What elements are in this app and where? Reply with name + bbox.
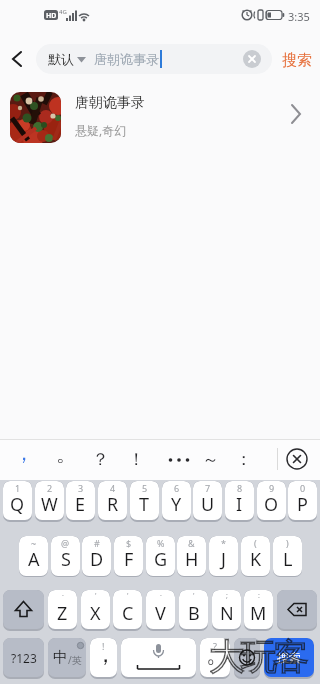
staticText: % [157, 537, 165, 549]
button[interactable]: ， [7, 444, 33, 474]
button[interactable] [6, 47, 32, 71]
button[interactable]: · [48, 590, 77, 631]
staticText: : [258, 591, 260, 601]
button[interactable] [234, 638, 260, 679]
button[interactable]: # [82, 536, 111, 577]
button[interactable]: 9 [257, 481, 286, 522]
button[interactable]: 6 [162, 481, 191, 522]
button[interactable]: 5 [130, 481, 159, 522]
button[interactable]: 搜索 [280, 48, 316, 70]
staticText: 默认 [48, 51, 74, 67]
button[interactable] [121, 638, 196, 679]
staticText: G [154, 547, 168, 572]
staticText: ： [235, 449, 252, 470]
button[interactable]: · [146, 590, 175, 631]
staticText: # [94, 537, 100, 549]
staticText: Z [57, 601, 68, 626]
staticText: 悬疑,奇幻 [75, 122, 127, 138]
staticText: 6 [174, 482, 180, 494]
staticText: V [155, 601, 166, 626]
staticText: P [297, 492, 308, 517]
staticText: ？ [92, 449, 109, 470]
staticText: ; [226, 591, 228, 601]
button[interactable] [3, 590, 44, 631]
staticText: ， [14, 441, 34, 466]
button[interactable]: 唐朝诡事录 [0, 86, 320, 148]
staticText: ' [193, 591, 195, 601]
button[interactable]: 搜索 [264, 638, 314, 679]
button[interactable]: ' [179, 590, 208, 631]
staticText: ( [254, 537, 257, 549]
button[interactable]: 1 [3, 481, 32, 522]
staticText: J [221, 547, 226, 572]
staticText: ~ [31, 537, 37, 549]
staticText: 5 [142, 482, 148, 494]
button[interactable]: 0 [288, 481, 317, 522]
staticText: 2 [47, 482, 53, 494]
button[interactable]: 默认 [36, 44, 272, 74]
staticText: $ [126, 537, 132, 549]
staticText: ～ [202, 449, 219, 470]
button[interactable]: % [146, 536, 175, 577]
button[interactable]: ?123 [3, 638, 44, 679]
staticText: ， [94, 640, 117, 669]
staticText: A [28, 547, 40, 572]
button[interactable]: 。 [49, 444, 75, 474]
button[interactable]: 3 [66, 481, 95, 522]
button[interactable] [243, 50, 261, 68]
button[interactable]: ~ [19, 536, 48, 577]
staticText: 1 [15, 482, 21, 494]
staticText: I [236, 492, 243, 517]
staticText: ' [127, 591, 129, 601]
button[interactable]: ? [200, 638, 230, 679]
staticText: M [250, 601, 267, 626]
button[interactable]: 7 [193, 481, 222, 522]
staticText: ！ [128, 449, 145, 470]
button[interactable]: ' [113, 590, 142, 631]
staticText: ) [286, 537, 289, 549]
staticText: 9 [269, 482, 275, 494]
staticText: O [264, 492, 279, 517]
staticText: 唐朝诡事录 [75, 94, 145, 112]
staticText: Y [171, 492, 182, 517]
button[interactable]: ！ [120, 444, 146, 474]
button[interactable]: & [177, 536, 206, 577]
staticText: 搜索 [277, 650, 301, 665]
button[interactable] [286, 448, 308, 470]
staticText: R [107, 492, 119, 517]
button[interactable]: ～ [194, 444, 220, 474]
staticText: 3:35 [288, 9, 310, 24]
staticText: ! [102, 640, 105, 652]
button[interactable]: 8 [225, 481, 254, 522]
staticText: Q [10, 492, 25, 517]
button[interactable]: * [209, 536, 238, 577]
button[interactable]: ) [273, 536, 302, 577]
button[interactable]: ; [212, 590, 241, 631]
button[interactable]: ! [90, 638, 117, 679]
staticText: L [283, 547, 293, 572]
staticText: HD [46, 11, 57, 21]
button[interactable]: ' [81, 590, 110, 631]
button[interactable]: $ [114, 536, 143, 577]
button[interactable]: ？ [84, 444, 110, 474]
button[interactable]: : [244, 590, 273, 631]
staticText: 大玩客 [211, 634, 307, 679]
button[interactable]: 2 [35, 481, 64, 522]
staticText: 8 [237, 482, 243, 494]
staticText: 0 [300, 482, 306, 494]
staticText: 。 [56, 442, 76, 467]
button[interactable]: ( [241, 536, 270, 577]
button[interactable]: @ [51, 536, 80, 577]
staticText: @ [61, 537, 70, 549]
staticText: /英 [68, 653, 82, 667]
button[interactable]: ： [227, 444, 253, 474]
staticText: E [75, 492, 86, 517]
staticText: 唐朝诡事录 [94, 51, 159, 67]
staticText: C [122, 601, 134, 626]
button[interactable] [277, 590, 317, 631]
button[interactable]: 4 [98, 481, 127, 522]
staticText: 3 [78, 482, 84, 494]
button[interactable]: 中 [48, 638, 86, 679]
staticText: B [188, 601, 200, 626]
staticText: · [160, 591, 162, 601]
